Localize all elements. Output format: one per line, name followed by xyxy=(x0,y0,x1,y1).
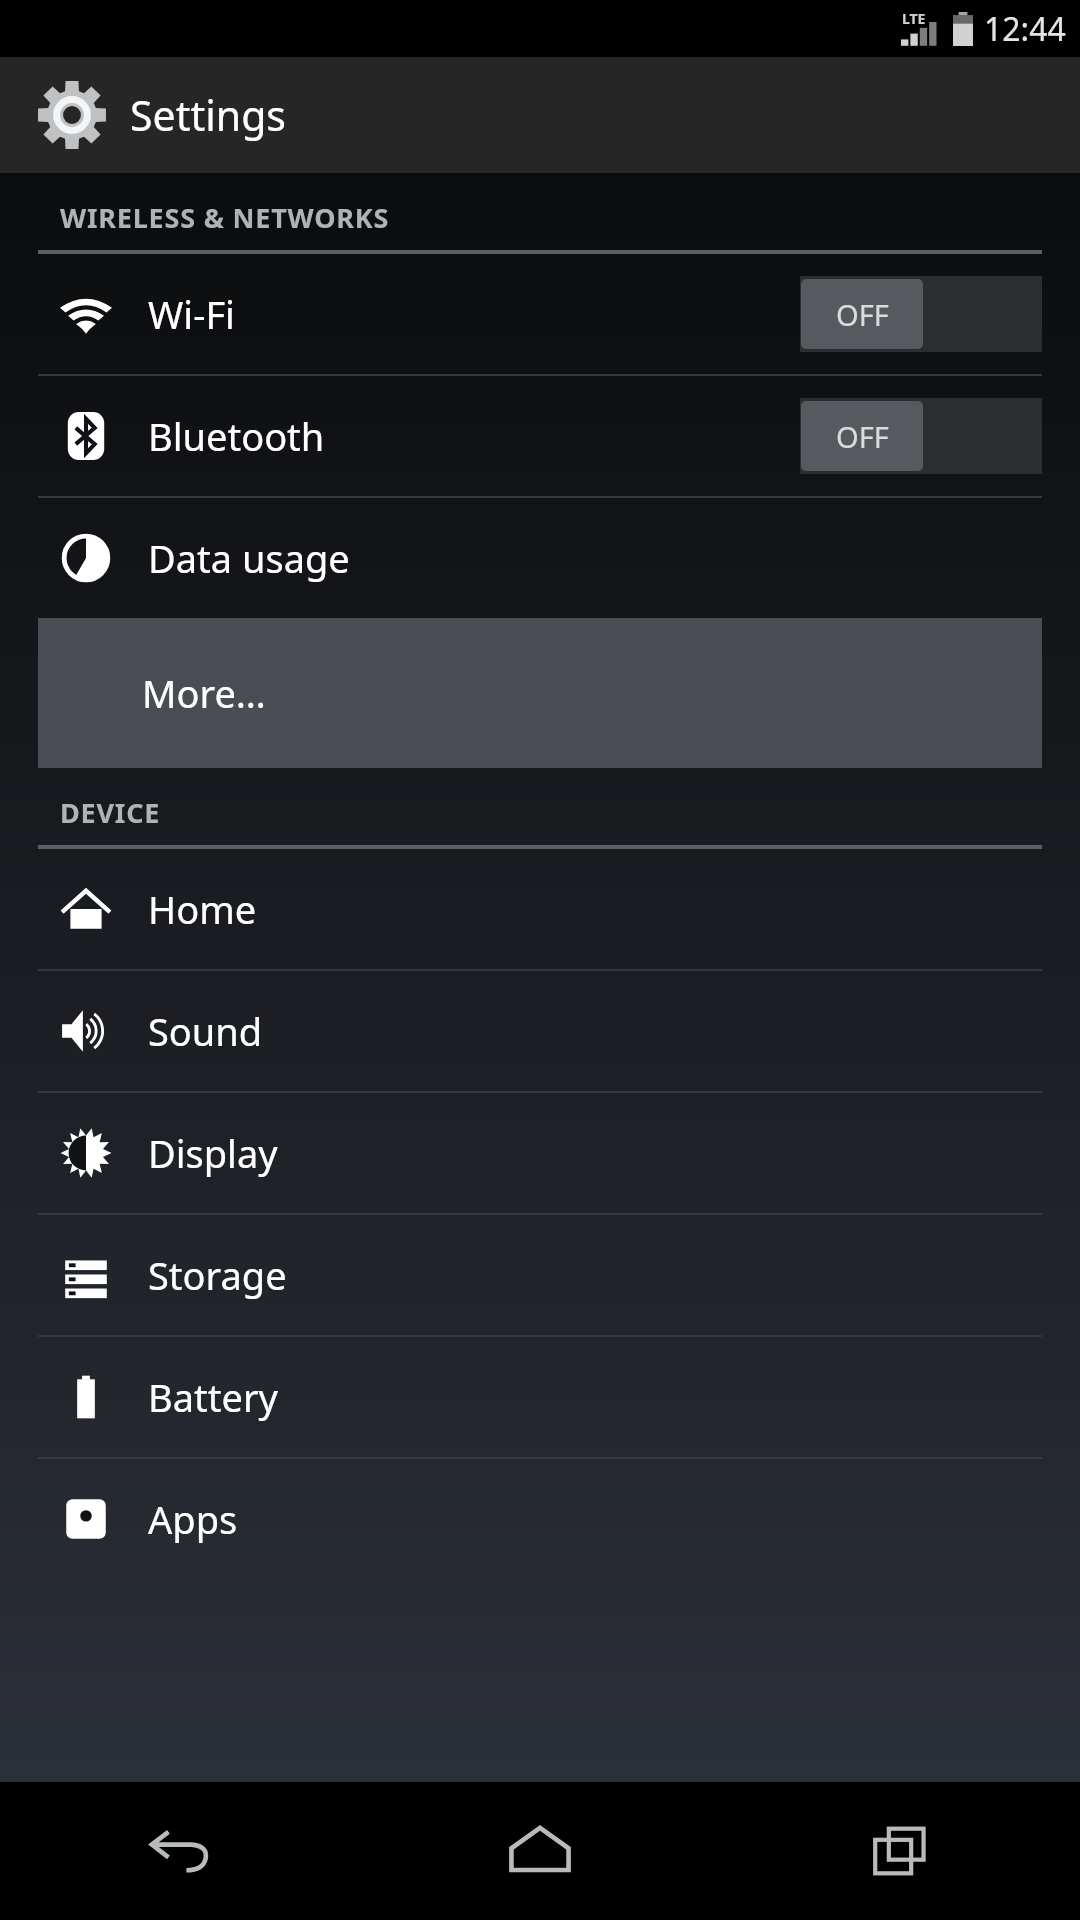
staticText: Wi-Fi xyxy=(148,288,235,340)
staticText: Data usage xyxy=(148,532,350,584)
button[interactable]: Toggle off xyxy=(800,276,1042,352)
staticText: Sound xyxy=(148,1005,263,1057)
button[interactable]: Bluetooth xyxy=(0,376,1080,496)
button[interactable]: Back xyxy=(0,1782,360,1920)
staticText: 12:44 xyxy=(984,7,1066,51)
staticText: Apps xyxy=(148,1493,238,1545)
button[interactable]: Data usage xyxy=(0,498,1080,618)
button[interactable]: Recent apps xyxy=(720,1782,1080,1920)
staticText: OFF xyxy=(836,295,889,334)
staticText: Battery xyxy=(148,1371,278,1423)
staticText: WIRELESS & NETWORKS xyxy=(60,199,390,236)
staticText: LTE xyxy=(902,9,926,28)
button[interactable]: Battery xyxy=(0,1337,1080,1457)
button[interactable]: Display xyxy=(0,1093,1080,1213)
button[interactable]: Storage xyxy=(0,1215,1080,1335)
button[interactable]: Home xyxy=(360,1782,720,1920)
button[interactable]: Sound xyxy=(0,971,1080,1091)
staticText: Home xyxy=(148,883,257,935)
staticText: More… xyxy=(142,667,266,719)
button[interactable]: More… xyxy=(38,618,1042,768)
button[interactable]: Toggle off xyxy=(800,398,1042,474)
staticText: Settings xyxy=(130,87,287,143)
staticText: Display xyxy=(148,1127,278,1179)
staticText: OFF xyxy=(836,417,889,456)
staticText: Storage xyxy=(148,1249,287,1301)
staticText: DEVICE xyxy=(60,794,161,831)
button[interactable]: Home xyxy=(0,849,1080,969)
staticText: Bluetooth xyxy=(148,410,325,462)
button[interactable]: Apps xyxy=(0,1459,1080,1579)
button[interactable]: Wi-Fi xyxy=(0,254,1080,374)
